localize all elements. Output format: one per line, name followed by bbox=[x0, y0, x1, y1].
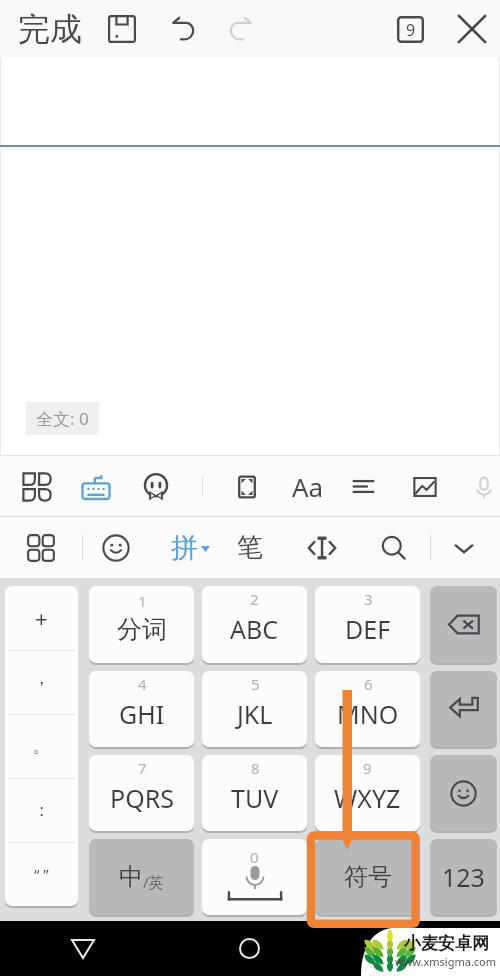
staticText: 6 bbox=[364, 674, 373, 694]
staticText: 笔 bbox=[237, 531, 263, 564]
staticText: MNO bbox=[337, 697, 399, 731]
button[interactable]: ， bbox=[5, 650, 78, 714]
staticText: 1 bbox=[138, 591, 147, 611]
button[interactable]: 拼 bbox=[165, 517, 215, 578]
staticText: Aa bbox=[292, 469, 324, 504]
button[interactable]: ： bbox=[5, 778, 78, 842]
button[interactable]: Fullscreen bbox=[227, 456, 267, 517]
button[interactable]: Recents bbox=[333, 921, 500, 976]
button[interactable]: 完成 bbox=[14, 0, 86, 58]
button[interactable]: 4 bbox=[89, 671, 194, 747]
button[interactable]: 9 bbox=[315, 755, 420, 831]
staticText: 9 bbox=[363, 758, 372, 778]
button[interactable]: Home bbox=[166, 921, 333, 976]
button[interactable]: Apps bbox=[21, 517, 61, 578]
button[interactable]: 符号 bbox=[315, 839, 420, 915]
button[interactable]: Collapse keyboard bbox=[444, 517, 484, 578]
button[interactable]: Redo bbox=[222, 0, 262, 58]
button[interactable]: Emoji bbox=[96, 517, 136, 578]
button[interactable]: 2 bbox=[202, 586, 307, 663]
button[interactable]: 8 bbox=[202, 755, 307, 831]
staticText: TUV bbox=[231, 781, 279, 815]
staticText: 拼 bbox=[171, 531, 198, 565]
button[interactable]: Keyboard bbox=[76, 456, 116, 517]
staticText: 0 bbox=[250, 847, 259, 867]
button[interactable]: Search bbox=[374, 517, 414, 578]
button[interactable]: “ ” bbox=[5, 842, 78, 906]
staticText: + bbox=[35, 603, 48, 633]
staticText: 。 bbox=[33, 736, 50, 757]
button[interactable]: Undo bbox=[162, 0, 202, 58]
staticText: 8 bbox=[251, 758, 260, 778]
staticText: ， bbox=[33, 668, 50, 689]
button[interactable]: 笔 bbox=[230, 517, 270, 578]
button[interactable]: Close bbox=[453, 0, 491, 58]
button[interactable]: Aa bbox=[288, 456, 328, 517]
staticText: 3 bbox=[364, 589, 373, 609]
staticText: 符号 bbox=[344, 862, 392, 892]
button[interactable]: del bbox=[430, 586, 497, 663]
button[interactable]: 5 bbox=[202, 671, 307, 747]
staticText: 7 bbox=[138, 758, 147, 778]
button[interactable]: Voice bbox=[464, 456, 500, 517]
button[interactable]: 7 bbox=[89, 755, 194, 831]
button[interactable]: Move cursor bbox=[302, 517, 342, 578]
staticText: WXYZ bbox=[334, 781, 401, 815]
staticText: 全文: 0 bbox=[36, 407, 89, 430]
button[interactable]: Apps bbox=[17, 456, 57, 517]
button[interactable]: Back bbox=[0, 921, 166, 976]
staticText: ： bbox=[33, 800, 50, 821]
staticText: 分词 bbox=[117, 614, 167, 645]
staticText: 小麦安卓网 bbox=[404, 933, 489, 954]
staticText: 2 bbox=[250, 589, 259, 609]
staticText: JKL bbox=[237, 697, 273, 731]
button[interactable]: + bbox=[5, 586, 78, 650]
button[interactable]: 1 bbox=[89, 586, 194, 663]
button[interactable]: 3 bbox=[315, 586, 420, 663]
button[interactable]: 。 bbox=[5, 714, 78, 778]
staticText: /英 bbox=[143, 872, 164, 892]
button[interactable]: Save bbox=[102, 0, 142, 58]
button[interactable]: Image bbox=[405, 456, 445, 517]
staticText: GHI bbox=[119, 697, 165, 731]
button[interactable]: Stickers bbox=[136, 456, 176, 517]
button[interactable]: Align bbox=[343, 456, 383, 517]
button[interactable]: Page count bbox=[391, 0, 429, 58]
staticText: 中 bbox=[119, 862, 143, 892]
staticText: 5 bbox=[251, 674, 260, 694]
button[interactable]: enter bbox=[430, 671, 497, 747]
staticText: 123 bbox=[442, 860, 485, 894]
staticText: 9 bbox=[406, 19, 416, 41]
button[interactable]: 中 bbox=[89, 839, 194, 915]
staticText: PQRS bbox=[110, 781, 174, 815]
button[interactable]: emoji bbox=[430, 755, 497, 831]
staticText: ABC bbox=[230, 612, 279, 646]
button[interactable]: Voice input bbox=[202, 839, 307, 915]
staticText: 完成 bbox=[18, 9, 82, 49]
staticText: www.xmsigma.com bbox=[395, 954, 497, 969]
staticText: “ ” bbox=[34, 864, 49, 884]
button[interactable]: 6 bbox=[315, 671, 420, 747]
staticText: 4 bbox=[138, 674, 147, 694]
staticText: DEF bbox=[345, 612, 391, 646]
button[interactable]: 123 bbox=[430, 839, 497, 915]
